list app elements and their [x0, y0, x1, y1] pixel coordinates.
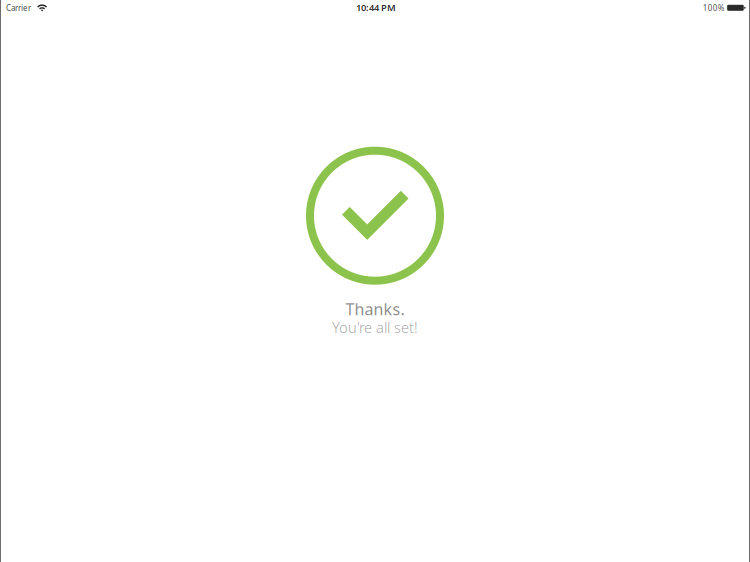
staticText: 100% — [703, 2, 725, 13]
staticText: You're all set! — [332, 318, 418, 337]
staticText: Carrier — [6, 2, 31, 13]
staticText: 10:44 PM — [356, 1, 396, 13]
staticText: Thanks. — [345, 298, 404, 320]
